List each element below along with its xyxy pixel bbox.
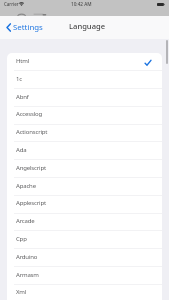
button[interactable]: Applescript (7, 195, 162, 213)
button[interactable]: Angelscript (7, 160, 162, 178)
staticText: Accesslog (16, 110, 43, 118)
button[interactable]: Actionscript (7, 124, 162, 142)
staticText: Carrier (4, 1, 19, 7)
button[interactable]: Armasm (7, 267, 162, 285)
staticText: Cpp (16, 235, 27, 243)
button[interactable]: Accesslog (7, 106, 162, 124)
staticText: Apache (16, 182, 36, 190)
button[interactable]: Xml (7, 284, 162, 300)
button[interactable]: Arcade (7, 213, 162, 231)
button[interactable]: Abnf (7, 89, 162, 107)
staticText: Applescript (16, 199, 46, 207)
button[interactable]: Cpp (7, 231, 162, 249)
button[interactable]: Settings (6, 20, 43, 34)
staticText: Arduino (16, 253, 38, 261)
staticText: Actionscript (16, 128, 48, 136)
staticText: Ada (16, 146, 27, 154)
staticText: Html (16, 57, 30, 65)
staticText: Settings (13, 22, 43, 33)
staticText: Arcade (16, 217, 35, 225)
button[interactable]: Apache (7, 178, 162, 196)
button[interactable]: Arduino (7, 249, 162, 267)
button[interactable]: Ada (7, 142, 162, 160)
staticText: Abnf (16, 93, 29, 101)
staticText: 10:42 AM (71, 1, 92, 7)
staticText: Language (69, 21, 106, 31)
staticText: Angelscript (16, 164, 46, 172)
button[interactable]: 1c (7, 71, 162, 89)
staticText: Xml (16, 288, 27, 296)
staticText: Armasm (16, 271, 39, 279)
button[interactable]: Html (7, 53, 162, 71)
staticText: 1c (16, 75, 22, 83)
